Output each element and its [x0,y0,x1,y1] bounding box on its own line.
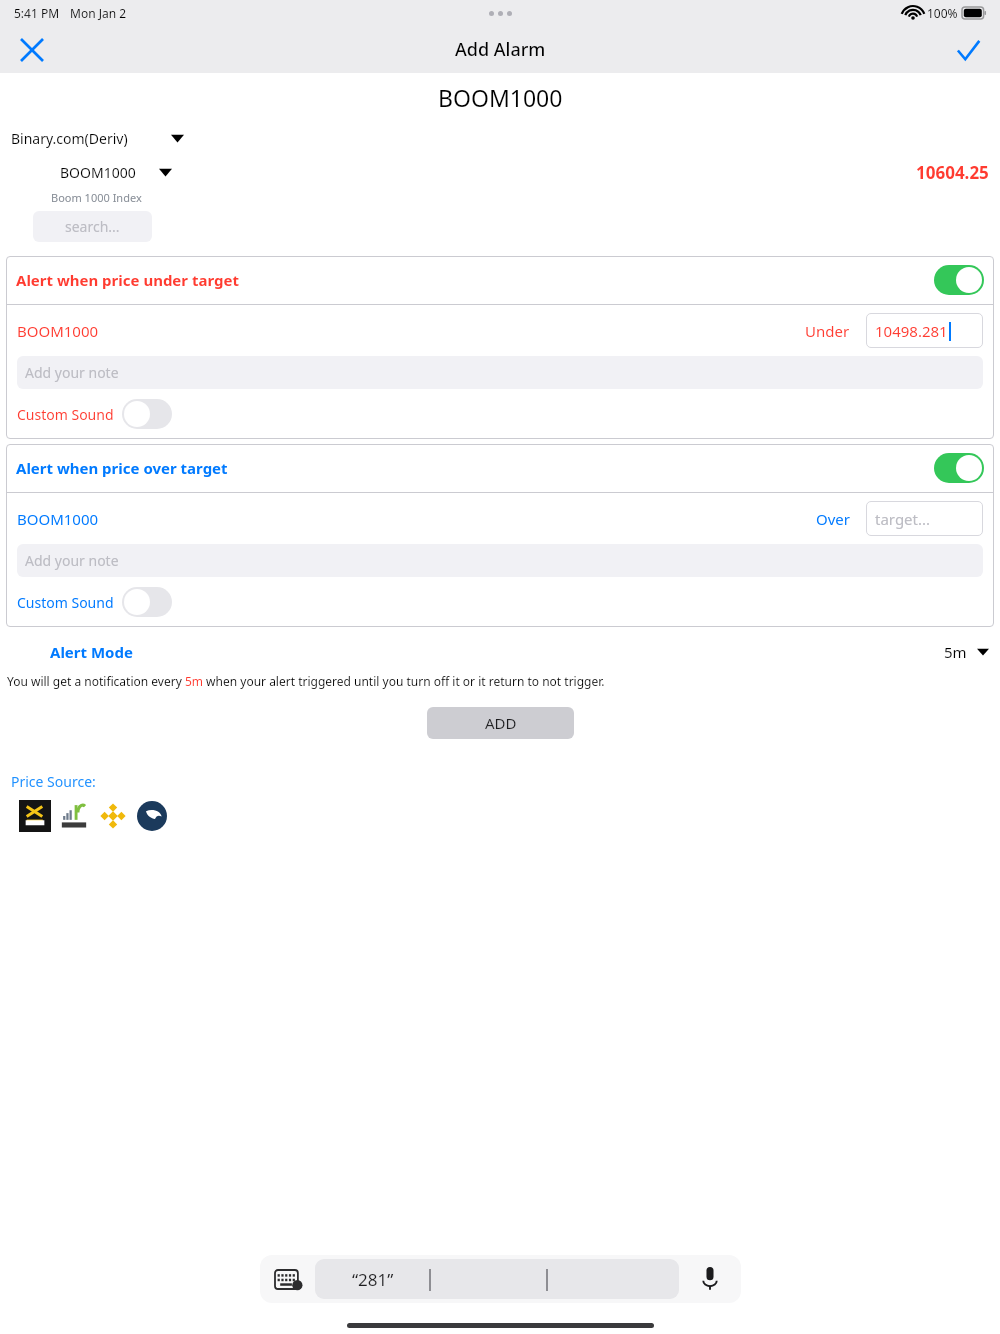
staticText: Under [805,321,850,341]
button[interactable]: “281” [315,1259,679,1299]
staticText: target... [875,509,931,529]
staticText: You will get a notification every 5m whe… [7,673,605,689]
staticText: Add your note [25,363,119,382]
staticText: Boom 1000 Index [51,190,142,205]
button[interactable]: IC Markets [58,800,90,832]
button[interactable]: Alert enabled [934,453,984,483]
staticText: BOOM1000 [60,163,136,182]
button[interactable]: Add your note [17,544,983,577]
staticText: BOOM1000 [17,321,99,341]
staticText: 10498.281 [875,321,948,341]
staticText: Price Source: [11,772,96,791]
button[interactable]: Dictate [679,1255,741,1303]
button[interactable]: Binance [97,800,129,832]
staticText: Custom Sound [17,405,114,424]
staticText: Mon Jan 2 [70,5,127,21]
button[interactable]: Alert when price under target [6,256,994,304]
button[interactable]: Save [946,28,990,72]
button[interactable]: Close [10,28,54,72]
staticText: Add your note [25,551,119,570]
staticText: 5:41 PM [14,5,60,21]
button[interactable]: Exness [19,800,51,832]
button[interactable]: Alert Mode [50,642,133,662]
staticText: Binary.com(Deriv) [11,129,128,148]
button[interactable]: Broker [136,800,168,832]
button[interactable]: Alert disabled [122,587,172,617]
staticText: Alert when price under target [16,270,239,290]
button[interactable]: 5m [944,642,989,662]
staticText: BOOM1000 [17,509,99,529]
button[interactable]: Binary.com(Deriv) [11,129,184,148]
staticText: ADD [485,713,517,733]
staticText: Custom Sound [17,593,114,612]
button[interactable]: Keyboard [260,1255,315,1303]
staticText: “281” [352,1268,394,1291]
staticText: 100% [927,5,958,21]
button[interactable]: target... [866,501,983,536]
button[interactable]: search... [33,211,152,242]
staticText: Add Alarm [455,37,546,62]
button[interactable]: 10498.281 [866,313,983,348]
button[interactable]: Add your note [17,356,983,389]
staticText: BOOM1000 [438,82,563,113]
button[interactable]: Alert when price over target [6,444,994,492]
staticText: Alert when price over target [16,458,228,478]
button[interactable]: ADD [427,707,574,739]
staticText: Over [816,509,850,529]
button[interactable]: BOOM1000 [60,163,172,182]
button[interactable]: Alert enabled [934,265,984,295]
staticText: search... [65,217,120,236]
staticText: 5m [944,642,967,662]
button[interactable]: Alert disabled [122,399,172,429]
staticText: 10604.25 [916,161,989,184]
